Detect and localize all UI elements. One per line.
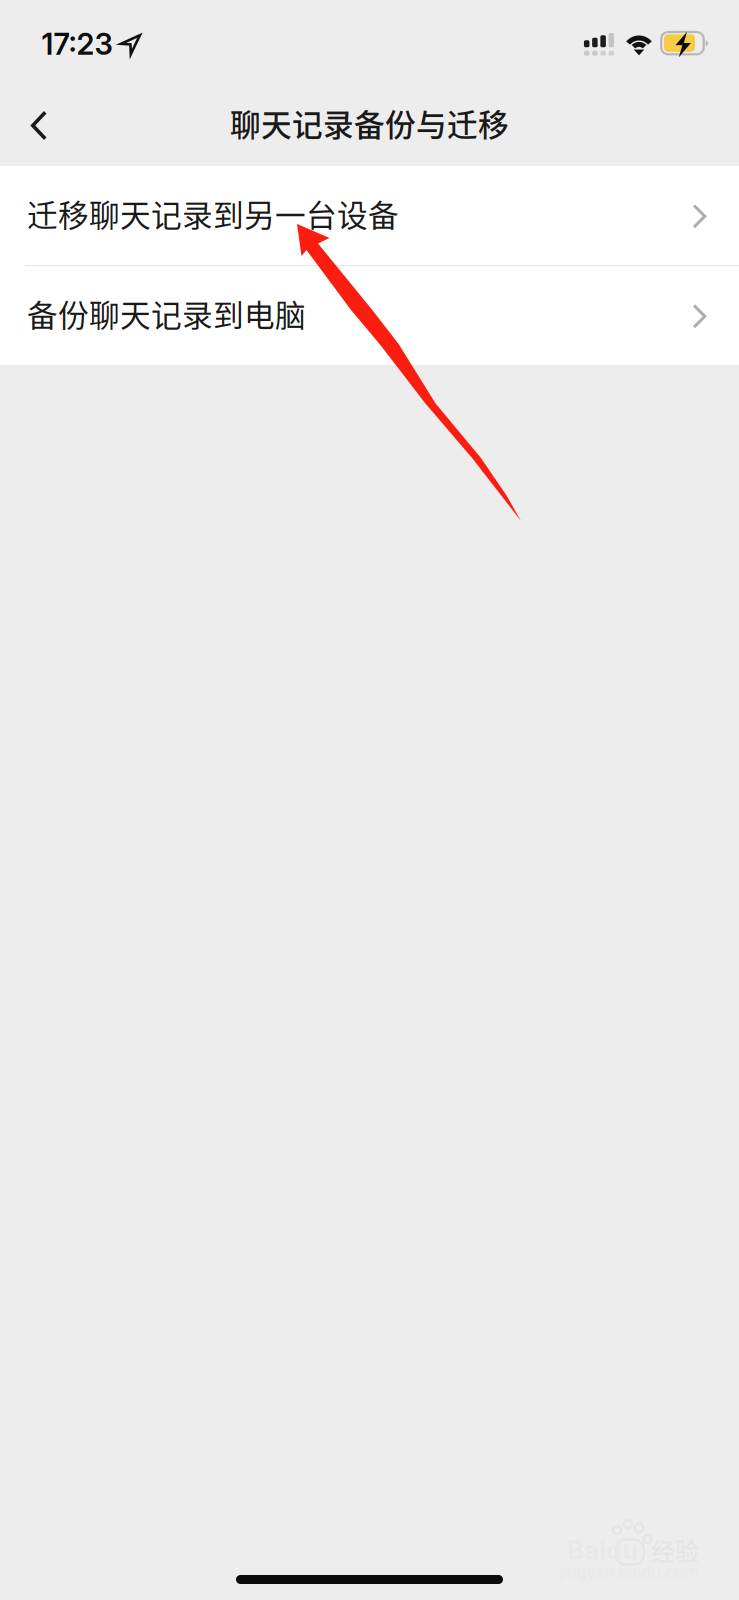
staticText: 迁移聊天记录到另一台设备 bbox=[27, 191, 399, 236]
staticText: 经验 bbox=[651, 1533, 699, 1567]
staticText: 备份聊天记录到电脑 bbox=[27, 291, 306, 336]
button[interactable]: Back bbox=[0, 88, 72, 166]
staticText: 17:23 bbox=[41, 26, 112, 62]
button[interactable]: 迁移聊天记录到另一台设备 bbox=[0, 166, 739, 265]
button[interactable]: 备份聊天记录到电脑 bbox=[0, 266, 739, 365]
staticText: 聊天记录备份与迁移 bbox=[230, 101, 509, 145]
